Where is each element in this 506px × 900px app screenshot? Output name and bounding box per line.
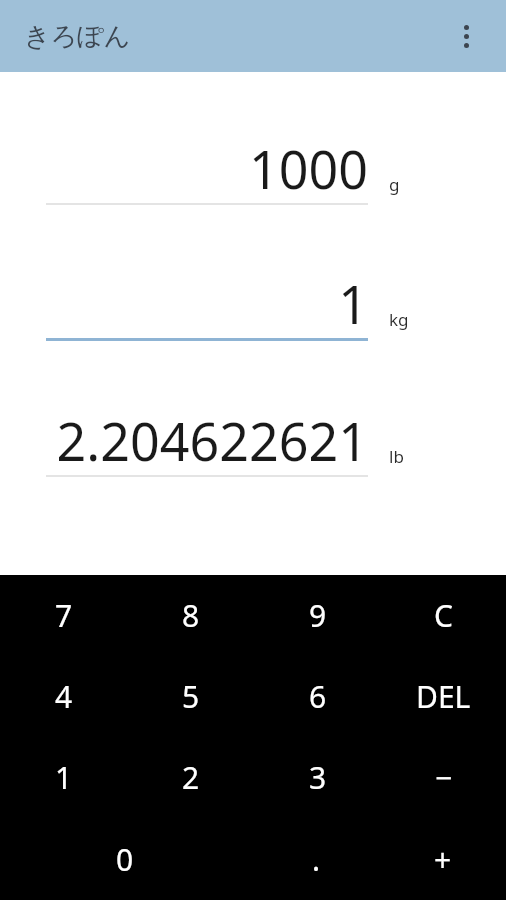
- staticText: きろぽん: [24, 20, 131, 53]
- button[interactable]: 1: [46, 268, 368, 338]
- staticText: 5: [182, 676, 200, 717]
- button[interactable]: 6: [254, 656, 381, 737]
- button[interactable]: 7: [0, 575, 127, 656]
- staticText: 8: [182, 595, 200, 636]
- button[interactable]: 9: [254, 575, 381, 656]
- staticText: 9: [309, 595, 327, 636]
- staticText: DEL: [416, 676, 471, 717]
- button[interactable]: 1000: [46, 133, 368, 203]
- staticText: −: [435, 757, 453, 798]
- staticText: 2: [182, 757, 200, 798]
- staticText: 1: [338, 268, 368, 338]
- button[interactable]: 3: [254, 737, 381, 818]
- staticText: 3: [309, 757, 327, 798]
- button[interactable]: C: [381, 575, 506, 656]
- button[interactable]: 2.20462262184: [46, 405, 368, 475]
- button[interactable]: 4: [0, 656, 127, 737]
- button[interactable]: 1: [0, 737, 127, 818]
- button[interactable]: 2: [127, 737, 254, 818]
- button[interactable]: +: [380, 818, 506, 900]
- staticText: kg: [389, 308, 409, 331]
- staticText: 6: [309, 676, 327, 717]
- button[interactable]: More options: [442, 12, 490, 60]
- staticText: .: [312, 839, 321, 880]
- staticText: 1000: [249, 133, 368, 203]
- staticText: 1: [55, 757, 73, 798]
- button[interactable]: 8: [127, 575, 254, 656]
- button[interactable]: .: [253, 818, 380, 900]
- button[interactable]: 0: [0, 818, 253, 900]
- staticText: 7: [55, 595, 73, 636]
- button[interactable]: DEL: [381, 656, 506, 737]
- staticText: C: [434, 595, 453, 636]
- staticText: 2.20462262184: [46, 405, 368, 475]
- staticText: g: [389, 173, 400, 196]
- staticText: +: [434, 839, 452, 880]
- staticText: lb: [389, 445, 404, 468]
- staticText: 4: [55, 676, 73, 717]
- staticText: 0: [116, 839, 134, 880]
- button[interactable]: 5: [127, 656, 254, 737]
- button[interactable]: −: [381, 737, 506, 818]
